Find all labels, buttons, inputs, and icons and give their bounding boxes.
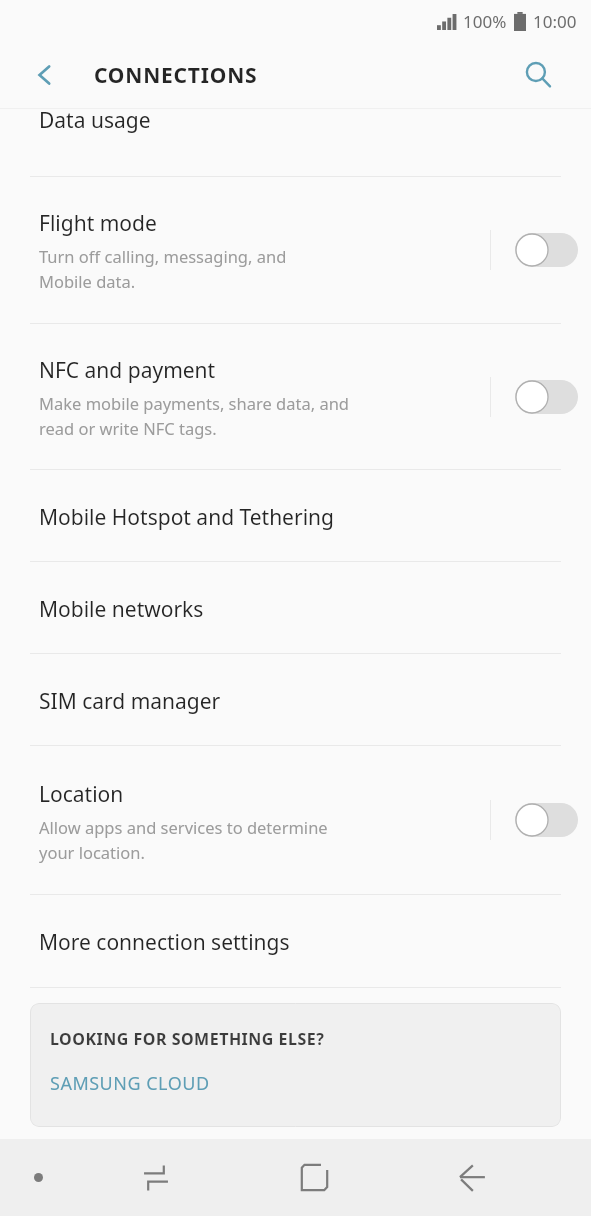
button[interactable]: Recents xyxy=(76,1139,235,1216)
button[interactable]: Back xyxy=(22,52,68,98)
staticText: Location xyxy=(39,780,124,809)
button[interactable]: Search xyxy=(514,51,562,99)
staticText: Flight mode xyxy=(39,209,157,238)
staticText: SAMSUNG CLOUD xyxy=(50,1071,210,1096)
staticText: Make mobile payments, share data, and re… xyxy=(39,392,349,439)
staticText: LOOKING FOR SOMETHING ELSE? xyxy=(50,1028,325,1050)
button[interactable]: Home xyxy=(235,1139,393,1216)
staticText: 100% xyxy=(463,10,507,33)
button[interactable]: Flight mode xyxy=(490,230,591,270)
button[interactable]: SAMSUNG CLOUD xyxy=(50,1071,210,1096)
staticText: Allow apps and services to determine you… xyxy=(39,816,328,863)
staticText: SIM card manager xyxy=(39,687,221,716)
button[interactable]: Back xyxy=(393,1139,551,1216)
staticText: Mobile networks xyxy=(39,595,204,624)
staticText: Mobile Hotspot and Tethering xyxy=(39,503,334,532)
button[interactable]: Location xyxy=(490,800,591,840)
staticText: 10:00 xyxy=(533,10,577,33)
staticText: More connection settings xyxy=(39,928,290,957)
staticText: Data usage xyxy=(39,106,151,135)
staticText: CONNECTIONS xyxy=(94,61,258,90)
button[interactable]: Mobile Hotspot and Tethering xyxy=(0,470,591,561)
button[interactable]: NFC and payment xyxy=(0,324,591,469)
button[interactable]: Mobile networks xyxy=(0,562,591,653)
button[interactable]: Data usage xyxy=(0,109,591,176)
button[interactable]: NFC and payment xyxy=(490,377,591,417)
button[interactable]: SIM card manager xyxy=(0,654,591,745)
staticText: Turn off calling, messaging, and Mobile … xyxy=(39,245,287,292)
button[interactable]: More connection settings xyxy=(0,895,591,987)
staticText: NFC and payment xyxy=(39,356,216,385)
button[interactable]: Location xyxy=(0,746,591,894)
button[interactable]: Flight mode xyxy=(0,177,591,323)
